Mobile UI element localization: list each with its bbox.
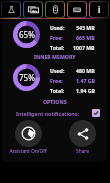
staticText: 343 MB	[76, 24, 95, 31]
staticText: Assistant On/Off	[9, 148, 47, 155]
staticText: 1.47 GB	[76, 77, 95, 84]
staticText: OPTIONS	[43, 98, 67, 105]
staticText: Free:	[50, 34, 63, 41]
staticText: Used:	[50, 67, 65, 74]
staticText: INNER MEMORY	[34, 53, 76, 60]
staticText: Intelligent notifications:	[16, 110, 79, 117]
button[interactable]: Lab	[0, 0, 22, 19]
button[interactable]: Display	[66, 0, 88, 19]
staticText: 75%	[19, 72, 35, 83]
button[interactable]: Assistant On/Off	[2, 120, 54, 155]
button[interactable]: Intelligent notifications:	[2, 106, 107, 120]
staticText: Total:	[50, 44, 65, 51]
staticText: 665 MB	[76, 34, 95, 41]
staticText: 1.94 GB	[76, 87, 95, 94]
staticText: Used:	[50, 24, 65, 31]
staticText: i	[98, 4, 101, 15]
button[interactable]: Info	[88, 0, 110, 19]
staticText: Total:	[50, 87, 65, 94]
button[interactable]: Device	[44, 0, 66, 19]
staticText: 480 MB	[76, 67, 95, 74]
staticText: 65%	[19, 29, 35, 40]
staticText: Free:	[50, 77, 63, 84]
button[interactable]: Gallery	[22, 0, 44, 19]
button[interactable]: Share	[56, 120, 107, 155]
staticText: Share	[76, 148, 89, 155]
staticText: 1007 MB	[73, 44, 95, 51]
